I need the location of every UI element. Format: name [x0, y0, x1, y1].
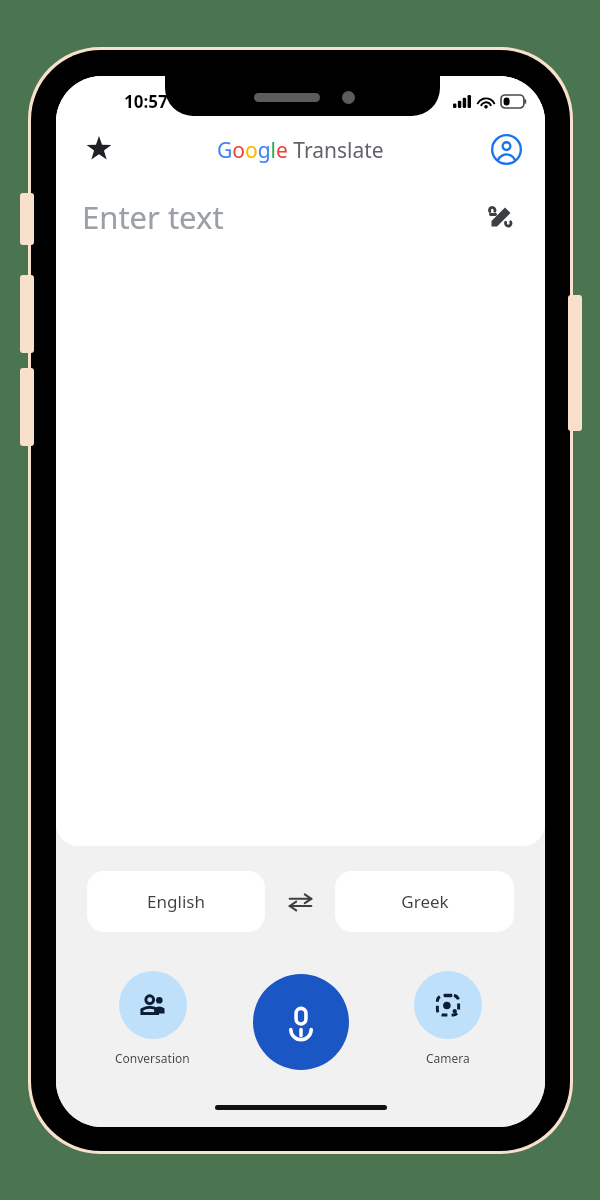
staticText: Camera	[426, 1050, 470, 1066]
staticText: 10:57	[124, 90, 168, 113]
button[interactable]: Conversation	[115, 971, 190, 1066]
button[interactable]: Handwriting input	[477, 194, 523, 240]
button[interactable]: Account	[481, 124, 531, 174]
staticText: Conversation	[115, 1050, 190, 1066]
button[interactable]: English	[87, 871, 265, 932]
button[interactable]: Swap languages	[265, 871, 335, 932]
button[interactable]: Speak	[253, 974, 349, 1070]
staticText: Google Translate	[217, 136, 384, 165]
staticText: English	[147, 890, 205, 913]
button[interactable]: Camera	[414, 971, 482, 1066]
button[interactable]: Saved	[74, 124, 124, 174]
button[interactable]: Enter text	[82, 196, 477, 238]
button[interactable]: Greek	[335, 871, 514, 932]
staticText: Greek	[401, 890, 449, 913]
